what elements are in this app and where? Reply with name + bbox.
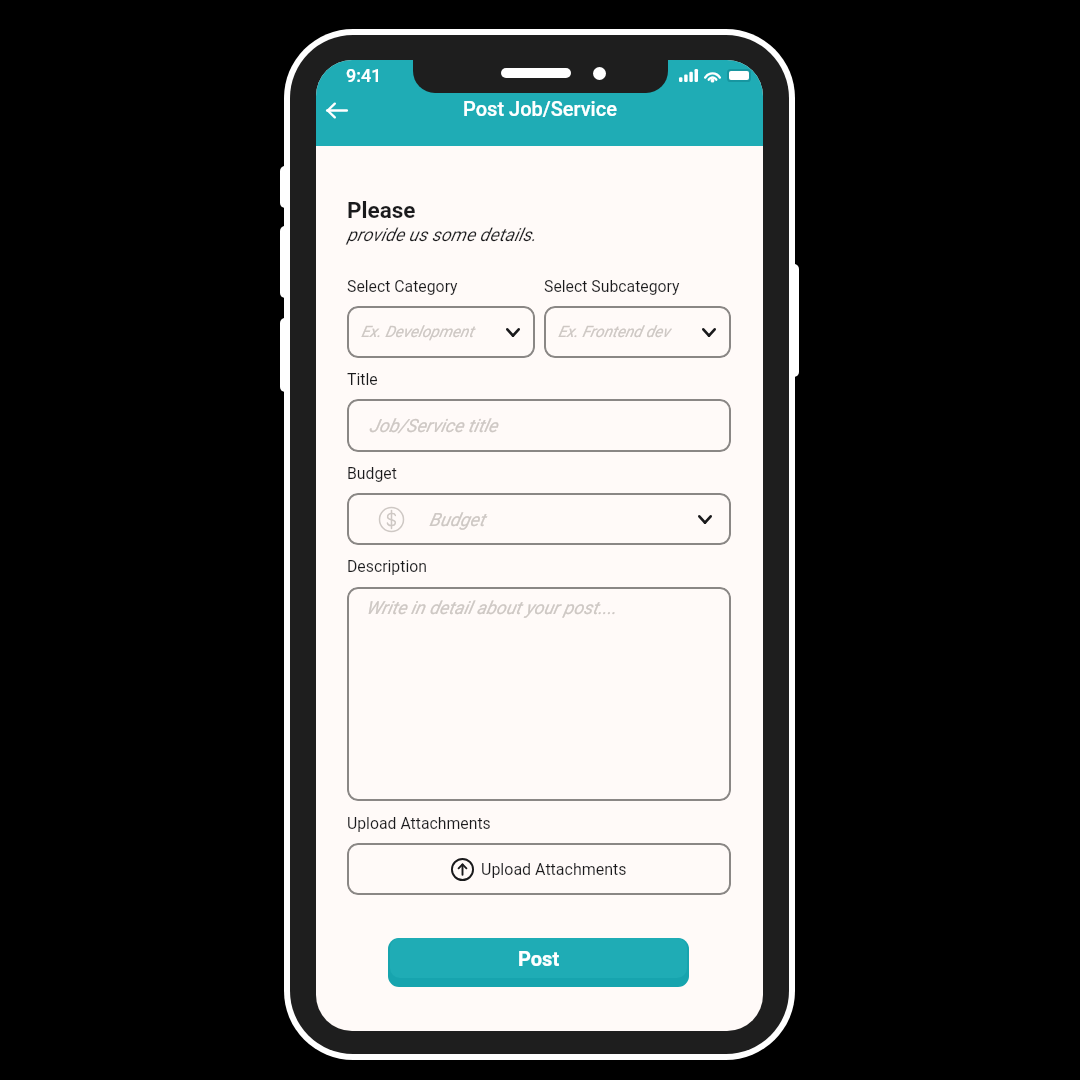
button[interactable]: Ex. Frontend dev: [544, 306, 731, 358]
staticText: Please: [347, 197, 416, 223]
staticText: Select Category: [347, 277, 458, 296]
button[interactable]: Budget: [347, 493, 731, 545]
staticText: Upload Attachments: [481, 860, 627, 879]
staticText: Job/Service title: [369, 415, 498, 436]
staticText: Ex. Frontend dev: [558, 323, 670, 341]
staticText: Post Job/Service: [463, 97, 617, 120]
staticText: Description: [347, 557, 427, 576]
staticText: Write in detail about your post....: [366, 597, 617, 618]
staticText: Post: [518, 947, 560, 970]
staticText: provide us some details.: [347, 224, 537, 245]
staticText: Budget: [347, 464, 397, 483]
button[interactable]: Ex. Development: [347, 306, 535, 358]
button[interactable]: Back: [316, 84, 363, 136]
staticText: Upload Attachments: [347, 814, 491, 833]
staticText: Select Subcategory: [544, 277, 680, 296]
button[interactable]: Post: [388, 938, 689, 987]
staticText: Ex. Development: [361, 323, 474, 341]
button[interactable]: Upload Attachments: [347, 843, 731, 895]
staticText: 9:41: [346, 65, 382, 86]
button[interactable]: Job/Service title: [347, 399, 731, 452]
staticText: Budget: [429, 509, 485, 530]
staticText: Title: [347, 370, 378, 389]
button[interactable]: Write in detail about your post....: [347, 587, 731, 801]
